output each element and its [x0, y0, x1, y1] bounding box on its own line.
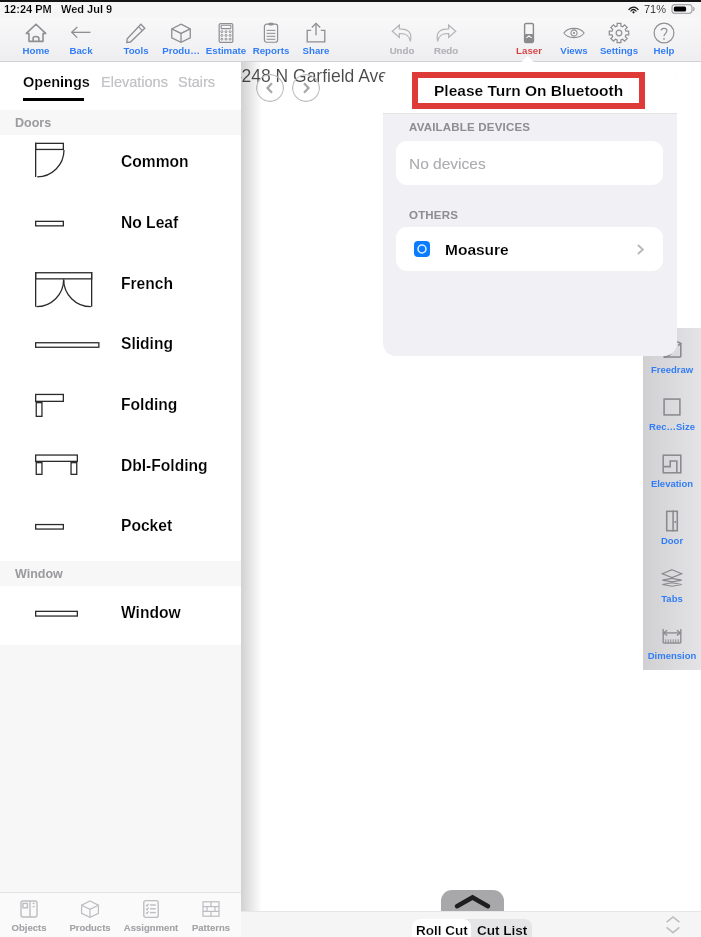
staticText: No Leaf: [121, 214, 179, 231]
button[interactable]: Stairs: [178, 74, 216, 90]
staticText: Help: [641, 45, 687, 56]
staticText: Cut List: [477, 923, 528, 937]
staticText: 71%: [644, 3, 667, 15]
staticText: Produ…: [158, 45, 204, 56]
staticText: Settings: [596, 45, 642, 56]
button[interactable]: Openings: [23, 74, 90, 90]
button[interactable]: Estimate: [203, 18, 249, 62]
button[interactable]: Home: [13, 18, 59, 62]
staticText: Sliding: [121, 335, 173, 352]
staticText: Freedraw: [643, 364, 701, 375]
staticText: Window: [15, 567, 63, 581]
button[interactable]: Produ…: [158, 18, 204, 62]
button[interactable]: Laser: [506, 18, 552, 62]
button[interactable]: Elevations: [101, 74, 168, 90]
button[interactable]: Roll Cut: [412, 919, 471, 937]
staticText: Redo: [423, 45, 469, 56]
staticText: Window: [121, 604, 181, 621]
button[interactable]: Undo: [379, 18, 425, 62]
button[interactable]: Cut List: [472, 919, 532, 937]
button[interactable]: Back: [58, 18, 104, 62]
button[interactable]: Next: [292, 74, 320, 102]
staticText: Estimate: [203, 45, 249, 56]
staticText: Tabs: [643, 593, 701, 604]
button[interactable]: Assignment: [120, 892, 182, 937]
button[interactable]: Redo: [423, 18, 469, 62]
button[interactable]: No devices: [396, 141, 663, 185]
staticText: Share: [293, 45, 339, 56]
staticText: Products: [59, 922, 121, 933]
staticText: Rec…Size: [643, 421, 701, 432]
button[interactable]: Expand panel: [441, 890, 504, 916]
button[interactable]: Pocket: [0, 495, 241, 555]
staticText: AVAILABLE DEVICES: [409, 121, 531, 134]
button[interactable]: Moasure: [396, 227, 663, 271]
staticText: Laser: [506, 45, 552, 56]
button[interactable]: Sliding: [0, 313, 241, 373]
button[interactable]: Objects: [0, 892, 60, 937]
button[interactable]: No Leaf: [0, 192, 241, 252]
staticText: Home: [13, 45, 59, 56]
staticText: Door: [643, 535, 701, 546]
staticText: OTHERS: [409, 209, 459, 222]
staticText: Doors: [15, 116, 52, 130]
button[interactable]: Dimension: [643, 614, 701, 671]
staticText: Common: [121, 153, 189, 170]
staticText: Pocket: [121, 517, 173, 534]
button[interactable]: Collapse: [663, 915, 683, 935]
button[interactable]: Settings: [596, 18, 642, 62]
staticText: Folding: [121, 396, 178, 413]
button[interactable]: Tabs: [643, 557, 701, 614]
button[interactable]: Window: [0, 582, 241, 642]
staticText: Roll Cut: [416, 923, 468, 937]
button[interactable]: Reports: [248, 18, 294, 62]
button[interactable]: Dbl-Folding: [0, 435, 241, 495]
staticText: Undo: [379, 45, 425, 56]
button[interactable]: Patterns: [180, 892, 242, 937]
staticText: Assignment: [120, 922, 182, 933]
staticText: Dbl-Folding: [121, 457, 208, 474]
staticText: Moasure: [445, 241, 509, 258]
staticText: Elevation: [643, 478, 701, 489]
staticText: Reports: [248, 45, 294, 56]
button[interactable]: Folding: [0, 374, 241, 434]
staticText: 12:24 PM: [4, 3, 52, 15]
staticText: Wed Jul 9: [61, 3, 113, 15]
staticText: Stairs: [178, 74, 216, 90]
button[interactable]: Previous: [256, 74, 284, 102]
button[interactable]: Share: [293, 18, 339, 62]
staticText: Tools: [113, 45, 159, 56]
staticText: French: [121, 275, 173, 292]
staticText: Openings: [23, 74, 90, 90]
staticText: Elevations: [101, 74, 168, 90]
button[interactable]: Rec…Size: [643, 385, 701, 442]
staticText: Objects: [0, 922, 60, 933]
staticText: 2–248 N Garfield Ave: [222, 66, 389, 86]
button[interactable]: French: [0, 253, 241, 313]
staticText: Please Turn On Bluetooth: [434, 82, 624, 99]
staticText: Views: [551, 45, 597, 56]
button[interactable]: Views: [551, 18, 597, 62]
button[interactable]: Elevation: [643, 442, 701, 499]
button[interactable]: Door: [643, 499, 701, 556]
button[interactable]: Products: [59, 892, 121, 937]
staticText: Dimension: [643, 650, 701, 661]
button[interactable]: Tools: [113, 18, 159, 62]
button[interactable]: Common: [0, 131, 241, 191]
button[interactable]: Freedraw: [643, 328, 701, 385]
staticText: Patterns: [180, 922, 242, 933]
staticText: Back: [58, 45, 104, 56]
staticText: No devices: [409, 155, 486, 172]
button[interactable]: Help: [641, 18, 687, 62]
